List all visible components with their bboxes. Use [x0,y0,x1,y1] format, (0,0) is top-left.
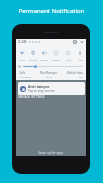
staticText: Tap to stop service [28,89,55,93]
button[interactable]: Anti tamper [18,82,85,95]
staticText: Torch [65,58,72,61]
button[interactable]: Cast [74,50,86,56]
staticText: No service [19,75,32,78]
staticText: 2:28 [18,39,27,45]
staticText: On [79,75,83,78]
staticText: Rotate [52,58,60,61]
staticText: Swipe up for apps [38,151,64,155]
staticText: Mobile data [67,71,83,75]
staticText: Cast [78,58,83,61]
button[interactable]: Wi-Fi [16,50,27,56]
button[interactable]: Location [27,50,38,56]
staticText: Sound [40,58,48,61]
staticText: Anti tamper [28,84,50,89]
staticText: Wi-Fi [19,58,25,61]
button[interactable]: Torch [62,50,74,56]
button[interactable]: Rotate [50,50,62,56]
staticText: Wi-Fi [46,75,52,78]
button[interactable]: Sound [38,50,50,56]
staticText: Cells [19,71,26,75]
button[interactable]: Settings [73,40,77,44]
staticText: MANAGE SETTINGS [18,95,45,99]
staticText: Location [28,58,38,61]
button[interactable]: Collapse [80,40,84,44]
staticText: Net Manager [40,71,58,75]
staticText: Permanent Notification [0,7,103,15]
button[interactable]: MANAGE SETTINGS [18,95,52,99]
